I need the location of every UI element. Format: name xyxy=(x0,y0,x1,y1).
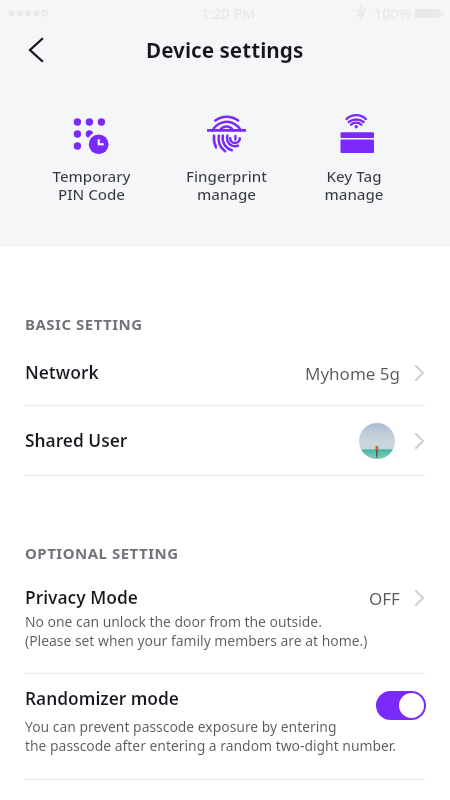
staticText: You can prevent passcode exposure by ent… xyxy=(25,717,397,755)
button[interactable]: Privacy Mode xyxy=(0,586,450,650)
button[interactable]: Key Tag manage xyxy=(284,112,424,205)
staticText: Temporary PIN Code xyxy=(52,166,131,205)
staticText: Fingerprint manage xyxy=(186,166,267,205)
staticText: Randomizer mode xyxy=(25,687,179,711)
staticText: Privacy Mode xyxy=(25,586,138,610)
staticText: Device settings xyxy=(146,36,304,64)
button[interactable]: Network xyxy=(0,341,450,405)
button[interactable]: Fingerprint manage xyxy=(156,112,296,205)
staticText: Network xyxy=(25,361,99,385)
button[interactable]: Temporary PIN Code xyxy=(21,112,161,205)
staticText: 1:20 PM xyxy=(201,3,256,23)
staticText: Key Tag manage xyxy=(324,166,384,205)
button[interactable]: Randomizer mode xyxy=(0,684,450,755)
staticText: 100% xyxy=(374,3,411,23)
button[interactable]: Back xyxy=(12,26,60,74)
button[interactable]: Randomizer mode toggle xyxy=(376,691,426,720)
staticText: OFF xyxy=(369,587,400,610)
staticText: No one can unlock the door from the outs… xyxy=(25,612,368,650)
button[interactable]: Shared User xyxy=(0,406,450,475)
staticText: Myhome 5g xyxy=(305,362,400,385)
staticText: Shared User xyxy=(25,429,128,453)
staticText: BASIC SETTING xyxy=(25,314,143,334)
staticText: OPTIONAL SETTING xyxy=(25,543,179,563)
